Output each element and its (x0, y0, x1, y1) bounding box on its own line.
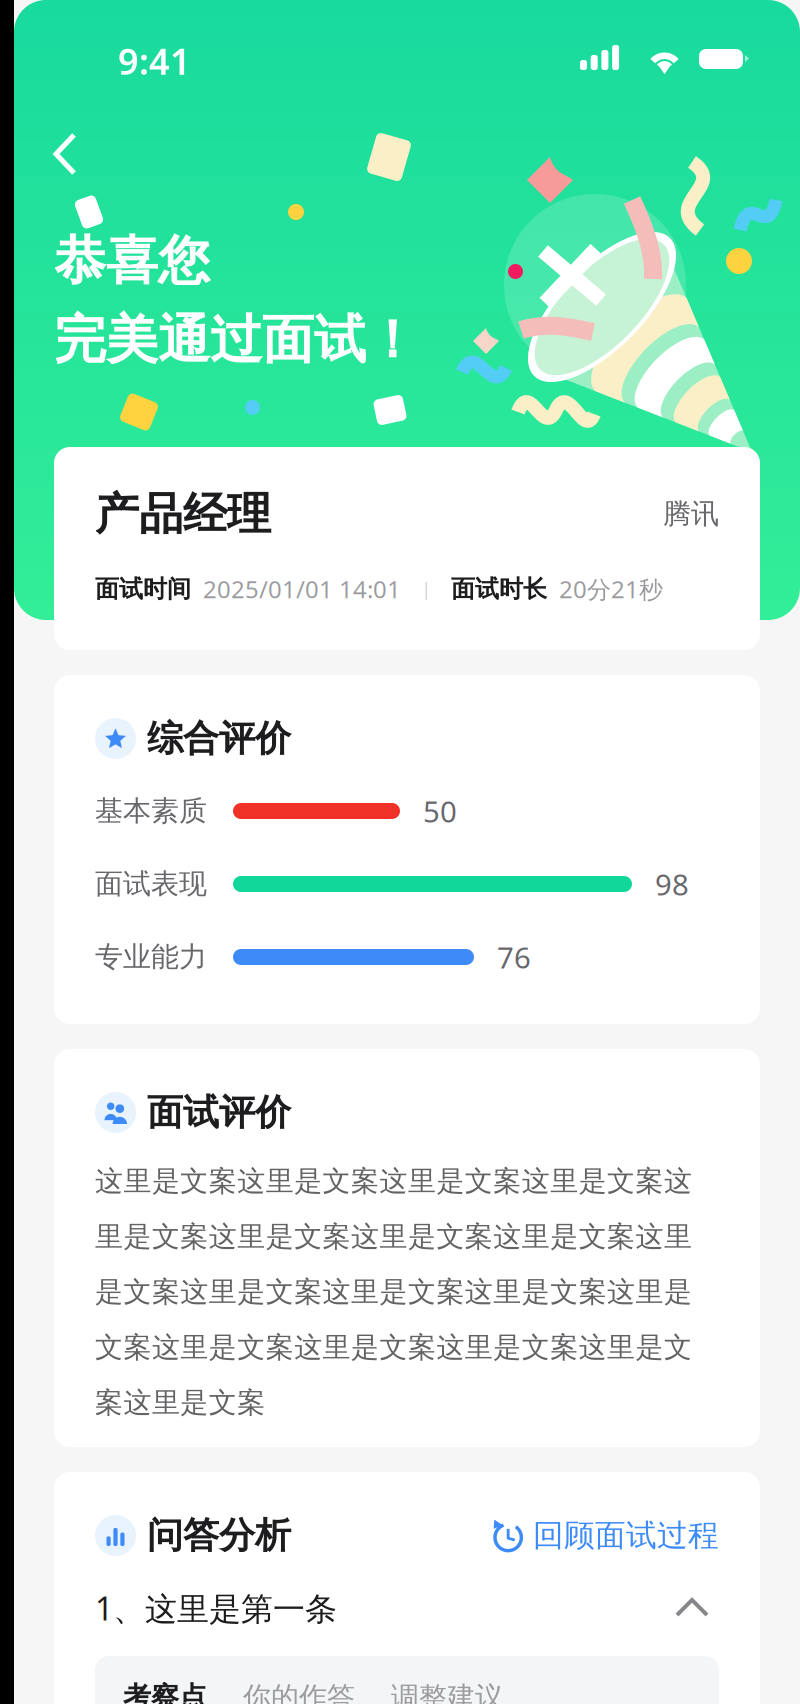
staticText: 50 (423, 791, 457, 830)
staticText: 调整建议 (391, 1680, 503, 1704)
button[interactable]: 返回 (36, 114, 112, 194)
staticText: 腾讯 (663, 497, 719, 531)
staticText: 9:41 (118, 37, 191, 85)
staticText: 恭喜您 (54, 229, 210, 293)
staticText: | (401, 577, 451, 601)
staticText: 20分21秒 (547, 573, 663, 605)
staticText: 产品经理 (95, 487, 271, 541)
staticText: 面试时间 (95, 574, 191, 604)
staticText: 面试评价 (147, 1090, 291, 1135)
staticText: 2025/01/01 14:01 (191, 573, 401, 605)
staticText: 面试时长 (451, 574, 547, 604)
staticText: 综合评价 (147, 716, 291, 761)
staticText: 回顾面试过程 (533, 1517, 719, 1554)
staticText: 76 (497, 937, 531, 976)
staticText: 考察点 (123, 1680, 207, 1704)
staticText: 你的作答 (243, 1680, 355, 1704)
button[interactable]: 回顾面试过程 (491, 1517, 719, 1554)
button[interactable]: 收起 (665, 1586, 719, 1630)
staticText: 基本素质 (95, 794, 207, 828)
staticText: 完美通过面试！ (54, 308, 418, 372)
staticText: 1、这里是第一条 (95, 1587, 337, 1629)
staticText: 面试表现 (95, 867, 207, 901)
staticText: 问答分析 (147, 1513, 291, 1558)
staticText: 专业能力 (95, 940, 207, 974)
staticText: 98 (655, 864, 689, 903)
staticText: 这里是文案这里是文案这里是文案这里是文案这里是文案这里是文案这里是文案这里是文案… (95, 1164, 692, 1420)
